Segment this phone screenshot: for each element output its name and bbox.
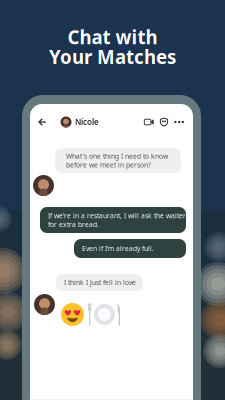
staticText: What's one thing I need to know before w…	[66, 152, 168, 169]
staticText: I think I just fell in love	[64, 278, 136, 287]
button[interactable]: Safety	[157, 104, 171, 140]
button[interactable]: Video call	[141, 104, 157, 140]
staticText: Even if I'm already full.	[82, 244, 154, 253]
button[interactable]: More options	[171, 104, 187, 140]
button[interactable]: Back	[30, 104, 60, 140]
staticText: Nicole	[75, 117, 99, 127]
staticText: Chat with	[67, 24, 157, 49]
staticText: If we're in a restaurant, I will ask the…	[48, 211, 186, 229]
staticText: Your Matches	[49, 44, 176, 69]
